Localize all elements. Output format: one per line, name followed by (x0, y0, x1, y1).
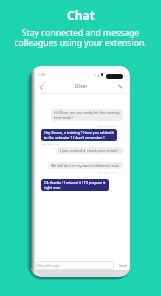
staticText: 4 Feb 2019 1:10 (41, 142, 60, 145)
button[interactable]: Back (37, 83, 46, 92)
staticText: New Message (38, 263, 61, 268)
staticText: Hey Bruno, a training ? Have you added i… (44, 130, 114, 140)
staticText: Oliver (75, 83, 88, 89)
staticText: 4 Feb 2019 1:10 (97, 170, 116, 173)
staticText: ◢ (97, 73, 100, 76)
button[interactable]: Hey Bruno, a training ? Have you added i… (41, 129, 117, 141)
staticText: Stay connected and message colleagues us… (14, 27, 147, 49)
button[interactable]: I just created it, check your emails ! (57, 147, 123, 154)
staticText: Hi Oliver, are you ready for the trainin… (54, 110, 120, 120)
staticText: We will do it in my own conference room (51, 163, 120, 168)
staticText: Chat (67, 7, 95, 23)
button[interactable]: We will do it in my own conference room (48, 162, 123, 169)
staticText: ◂ (94, 73, 96, 76)
staticText: Send (119, 263, 127, 268)
button[interactable]: Hi Oliver, are you ready for the trainin… (51, 109, 123, 121)
button[interactable]: Ok thanks ! I missed it ! I'll prepare i… (41, 179, 109, 191)
button[interactable]: Send (116, 261, 129, 270)
button[interactable]: Call (117, 83, 124, 90)
staticText: 4 Feb 2019 1:10 (97, 124, 116, 127)
staticText: 1:06 (38, 72, 45, 77)
staticText: I just created it, check your emails ! (60, 148, 120, 153)
button[interactable]: New Message (36, 261, 114, 270)
staticText: Ok thanks ! I missed it ! I'll prepare i… (44, 180, 106, 190)
